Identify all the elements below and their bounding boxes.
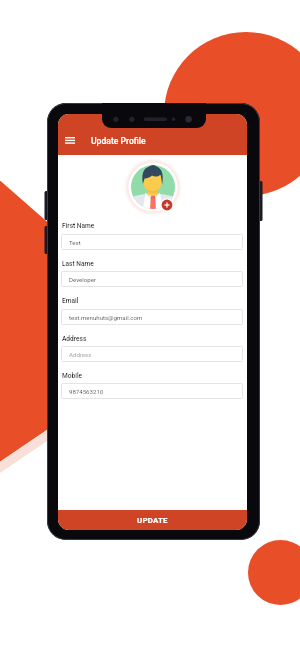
button[interactable]: Developer — [61, 271, 243, 287]
button[interactable]: test.menuhuts@gmail.com — [61, 309, 243, 325]
staticText: UPDATE — [137, 516, 168, 525]
button[interactable]: Address — [61, 346, 243, 362]
staticText: Address — [69, 351, 92, 358]
staticText: Update Profile — [91, 136, 146, 146]
staticText: Mobile — [62, 372, 83, 380]
staticText: 9874563210 — [69, 388, 104, 395]
staticText: Test — [69, 239, 81, 246]
button[interactable]: Open navigation menu — [61, 133, 78, 148]
staticText: test.menuhuts@gmail.com — [69, 314, 143, 321]
staticText: Email — [62, 297, 79, 305]
button[interactable]: UPDATE — [58, 510, 247, 530]
staticText: Last Name — [62, 260, 94, 268]
button[interactable]: Change profile photo — [125, 159, 181, 215]
staticText: First Name — [62, 222, 95, 230]
button[interactable]: 9874563210 — [61, 383, 243, 399]
staticText: Developer — [69, 276, 97, 283]
button[interactable]: Test — [61, 234, 243, 250]
staticText: Address — [62, 335, 87, 343]
